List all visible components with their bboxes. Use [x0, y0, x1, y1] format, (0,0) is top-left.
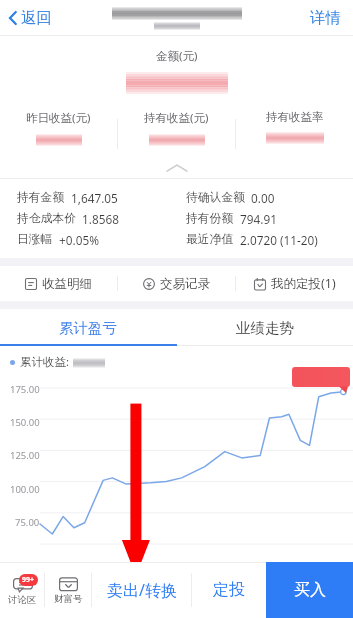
button[interactable]: 持有收益率 — [236, 110, 353, 158]
button[interactable]: 定投 — [192, 562, 266, 618]
staticText: 持有收益率 — [266, 110, 324, 124]
staticText: 累计盈亏 — [59, 319, 117, 337]
staticText: 待确认金额 — [186, 190, 245, 205]
button[interactable]: 持有收益(元) — [118, 110, 235, 158]
button[interactable]: 详情 — [298, 1, 353, 35]
staticText: 累计收益: — [20, 354, 70, 370]
staticText: 买入 — [294, 580, 326, 600]
button[interactable]: 卖出/转换 — [92, 562, 191, 618]
staticText: 定投 — [213, 580, 245, 600]
button[interactable]: 昨日收益(元) — [0, 110, 117, 158]
staticText: 125.00 — [10, 449, 40, 460]
staticText: 交易记录 — [160, 276, 210, 292]
staticText: 1.8568 — [82, 211, 119, 227]
staticText: 持有份额 — [186, 211, 234, 226]
staticText: 卖出/转换 — [107, 579, 177, 601]
button[interactable]: 累计盈亏 — [0, 309, 176, 346]
staticText: 持有金额 — [17, 190, 65, 205]
button[interactable]: 收起 — [0, 158, 353, 178]
button[interactable]: 99+ — [0, 562, 44, 618]
staticText: 150.00 — [10, 416, 40, 427]
staticText: +0.05% — [59, 232, 99, 248]
button[interactable]: 交易记录 — [118, 266, 235, 301]
button[interactable]: 我的定投(1) — [236, 266, 353, 301]
staticText: 0.00 — [251, 190, 275, 206]
staticText: 日涨幅 — [17, 232, 53, 247]
staticText: 金额(元) — [156, 48, 198, 64]
staticText: 75.00 — [15, 516, 40, 527]
staticText: 持仓成本价 — [17, 211, 76, 226]
staticText: 财富号 — [54, 593, 83, 605]
staticText: 我的定投(1) — [271, 275, 336, 292]
button[interactable]: 财富号 — [45, 562, 91, 618]
staticText: 返回 — [21, 8, 52, 28]
staticText: 175.00 — [10, 383, 40, 394]
staticText: 99+ — [22, 575, 35, 585]
staticText: 讨论区 — [8, 594, 37, 606]
staticText: 100.00 — [10, 483, 40, 494]
staticText: 794.91 — [240, 211, 277, 227]
staticText: 最近净值 — [186, 232, 234, 247]
staticText: 1,647.05 — [71, 190, 118, 206]
staticText: 昨日收益(元) — [26, 110, 91, 126]
staticText: 收益明细 — [42, 276, 92, 292]
button[interactable]: 业绩走势 — [176, 309, 353, 346]
button[interactable]: 收益明细 — [0, 266, 117, 301]
staticText: 持有收益(元) — [144, 110, 209, 126]
staticText: 2.0720 (11-20) — [240, 232, 318, 248]
button[interactable]: 买入 — [266, 562, 353, 618]
staticText: 业绩走势 — [236, 319, 294, 337]
button[interactable]: 返回 — [0, 3, 64, 33]
